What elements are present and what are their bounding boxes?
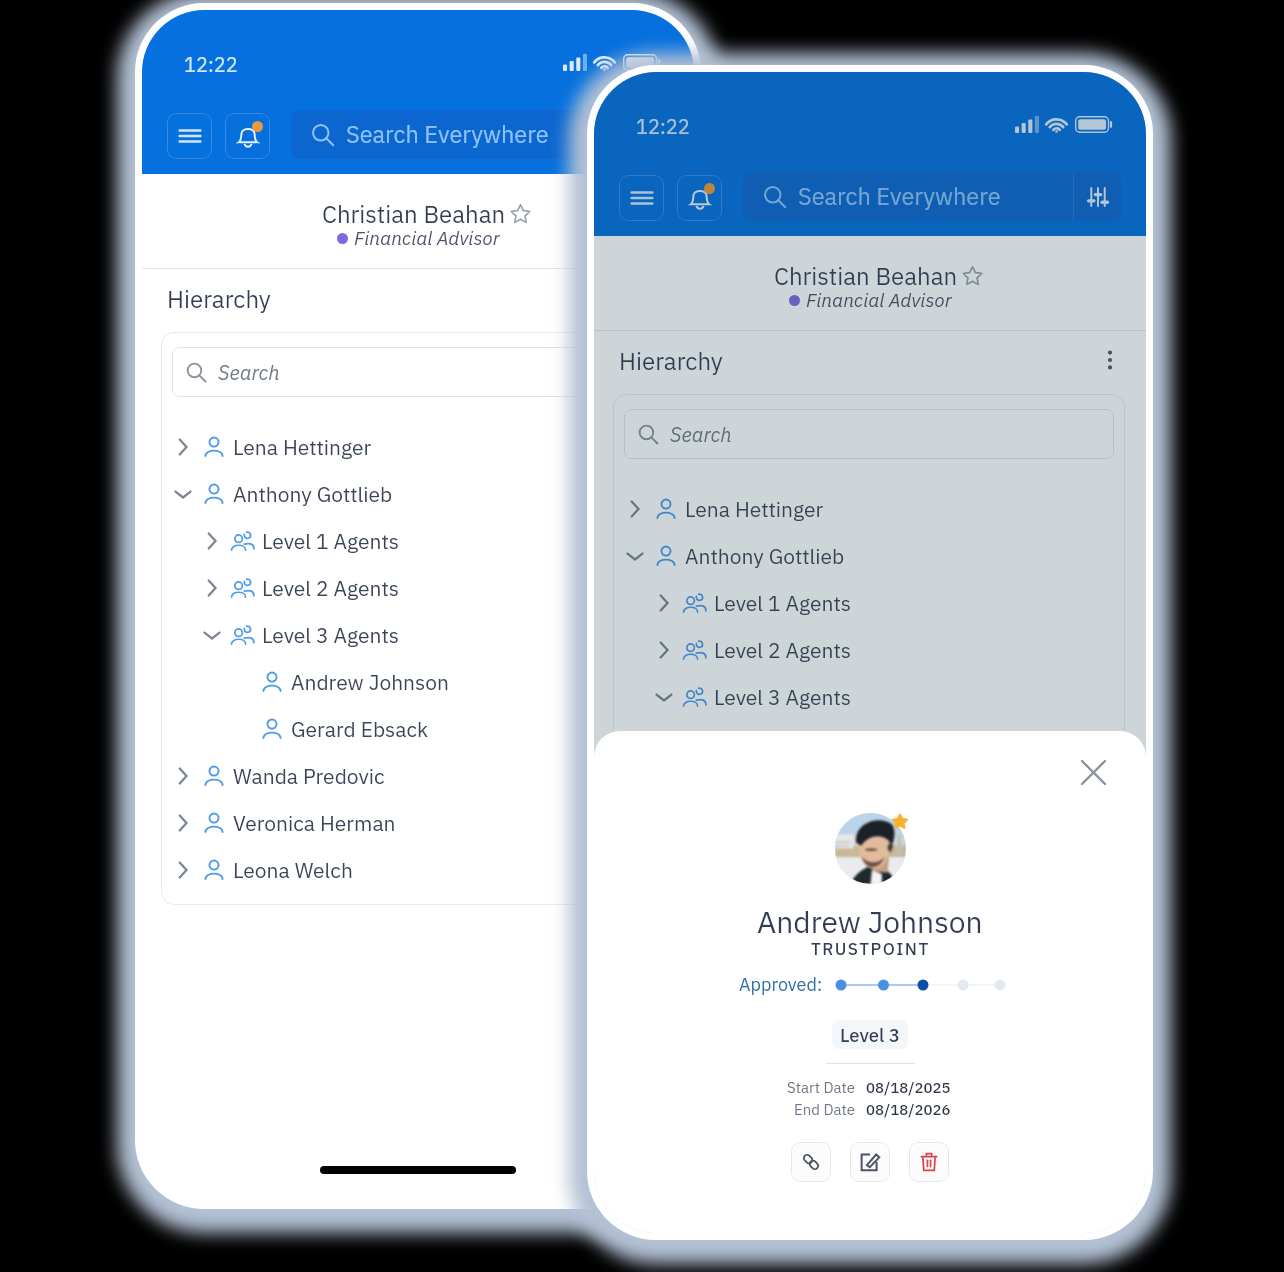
staticText: Hierarchy	[167, 283, 271, 314]
button[interactable]: Level 2 Agents	[200, 564, 673, 611]
staticText: Gerard Ebsack	[291, 715, 429, 742]
staticText: TRUSTPOINT	[811, 938, 930, 960]
button[interactable]: Wanda Predovic	[623, 814, 1125, 861]
button[interactable]: Copy link	[791, 1142, 831, 1182]
button[interactable]: Search	[172, 347, 662, 397]
staticText: Wanda Predovic	[233, 762, 385, 789]
button[interactable]: Favourite	[961, 265, 983, 287]
staticText: Search Everywhere	[798, 181, 1001, 212]
staticText: Leona Welch	[685, 918, 805, 945]
button[interactable]: Anthony Gottlieb	[171, 470, 673, 517]
staticText: Christian Beahan	[322, 198, 506, 229]
staticText: 08/18/2025	[866, 1078, 951, 1098]
staticText: Andrew Johnson	[757, 902, 983, 941]
button[interactable]: Anthony Gottlieb	[623, 532, 1125, 579]
button[interactable]: Veronica Herman	[623, 861, 1125, 908]
staticText: Andrew Johnson	[291, 668, 449, 695]
staticText: Level 2 Agents	[262, 574, 400, 601]
staticText: Approved:	[739, 973, 823, 996]
staticText: Wanda Predovic	[685, 824, 837, 851]
button[interactable]: Level 3 Agents	[200, 611, 673, 658]
button[interactable]: Menu	[619, 175, 664, 221]
staticText: Level 3 Agents	[262, 621, 400, 648]
button[interactable]: Gerard Ebsack	[681, 767, 1125, 814]
staticText: Lena Hettinger	[233, 433, 372, 460]
staticText: Search Everywhere	[346, 119, 549, 150]
staticText: 08/18/2026	[866, 1100, 951, 1120]
staticText: Level 3 Agents	[714, 683, 852, 710]
button[interactable]: Level 2 Agents	[652, 626, 1125, 673]
button[interactable]: Level 1 Agents	[652, 579, 1125, 626]
button[interactable]: Edit	[850, 1142, 890, 1182]
button[interactable]: Andrew Johnson	[681, 720, 1125, 767]
staticText: Anthony Gottlieb	[685, 542, 845, 569]
button[interactable]: Veronica Herman	[171, 799, 673, 846]
staticText: Veronica Herman	[233, 809, 396, 836]
staticText: Financial Advisor	[354, 226, 500, 251]
staticText: Christian Beahan	[774, 260, 958, 291]
button[interactable]: Search	[624, 409, 1114, 459]
staticText: 12:22	[636, 113, 690, 139]
button[interactable]: Level 3 Agents	[652, 673, 1125, 720]
button[interactable]: Lena Hettinger	[171, 423, 673, 470]
staticText: End Date	[787, 1100, 855, 1120]
button[interactable]: Level 1 Agents	[200, 517, 673, 564]
button[interactable]: Lena Hettinger	[623, 485, 1125, 532]
button[interactable]: Filters	[1074, 172, 1121, 221]
button[interactable]: Notifications	[677, 175, 722, 221]
staticText: Level 3	[840, 1023, 900, 1047]
button[interactable]: Leona Welch	[171, 846, 673, 893]
button[interactable]: Close	[1074, 753, 1112, 791]
staticText: Level 1 Agents	[714, 589, 852, 616]
staticText: Start Date	[787, 1078, 855, 1098]
staticText: Andrew Johnson	[743, 730, 901, 757]
staticText: 12:22	[184, 51, 238, 77]
staticText: Lena Hettinger	[685, 495, 824, 522]
button[interactable]: Wanda Predovic	[171, 752, 673, 799]
button[interactable]: Notifications	[225, 113, 270, 159]
button[interactable]: More options	[1095, 345, 1125, 375]
staticText: Financial Advisor	[806, 288, 952, 313]
button[interactable]: Search Everywhere	[743, 172, 1121, 221]
button[interactable]: Search Everywhere	[291, 110, 669, 159]
button[interactable]: Gerard Ebsack	[229, 705, 673, 752]
button[interactable]: Level 3	[832, 1020, 908, 1049]
button[interactable]: Andrew Johnson	[229, 658, 673, 705]
staticText: Leona Welch	[233, 856, 353, 883]
staticText: Search	[218, 359, 280, 385]
staticText: Search	[670, 421, 732, 447]
staticText: Level 1 Agents	[262, 527, 400, 554]
button[interactable]: Filters	[622, 110, 669, 159]
staticText: Hierarchy	[619, 345, 723, 376]
button[interactable]: Menu	[167, 113, 212, 159]
staticText: Anthony Gottlieb	[233, 480, 393, 507]
button[interactable]: Leona Welch	[623, 908, 1125, 955]
button[interactable]: Favourite	[509, 203, 531, 225]
button[interactable]: Delete	[909, 1142, 949, 1182]
staticText: Level 2 Agents	[714, 636, 852, 663]
